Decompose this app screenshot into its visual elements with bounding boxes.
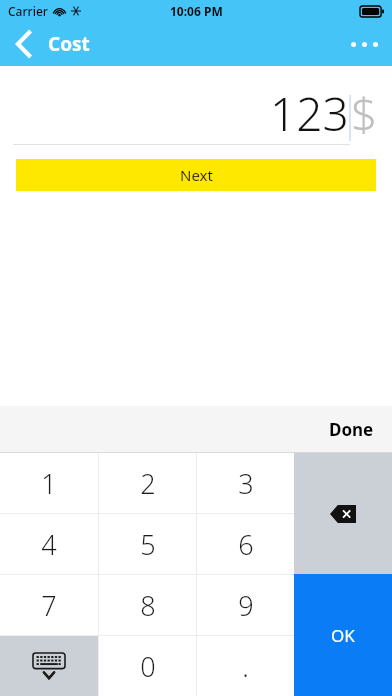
staticText: 4 bbox=[41, 526, 57, 563]
staticText: 10:06 PM bbox=[170, 3, 223, 19]
button[interactable]: 0 bbox=[99, 636, 196, 696]
staticText: Next bbox=[180, 165, 213, 185]
staticText: 9 bbox=[238, 587, 254, 624]
staticText: 6 bbox=[238, 526, 254, 563]
button[interactable]: Hide keyboard bbox=[0, 636, 98, 696]
staticText: 8 bbox=[140, 587, 156, 624]
button[interactable]: More options bbox=[336, 22, 392, 66]
staticText: 123 bbox=[270, 82, 349, 144]
staticText: $ bbox=[351, 82, 378, 144]
button[interactable]: Backspace bbox=[294, 453, 392, 574]
button[interactable]: OK bbox=[294, 574, 392, 696]
staticText: OK bbox=[331, 624, 355, 647]
staticText: 3 bbox=[238, 465, 254, 502]
staticText: Carrier bbox=[8, 3, 48, 19]
staticText: 2 bbox=[140, 465, 156, 502]
button[interactable]: 8 bbox=[99, 575, 196, 635]
staticText: Done bbox=[329, 418, 374, 441]
button[interactable]: . bbox=[197, 636, 294, 696]
button[interactable]: 9 bbox=[197, 575, 294, 635]
button[interactable]: 5 bbox=[99, 514, 196, 574]
button[interactable]: 7 bbox=[0, 575, 98, 635]
button[interactable]: 2 bbox=[99, 453, 196, 513]
button[interactable]: 6 bbox=[197, 514, 294, 574]
staticText: Cost bbox=[48, 31, 90, 57]
button[interactable]: Next bbox=[16, 159, 376, 191]
staticText: 0 bbox=[140, 648, 156, 685]
button[interactable]: Done bbox=[311, 406, 392, 452]
button[interactable]: 4 bbox=[0, 514, 98, 574]
button[interactable]: 1 bbox=[0, 453, 98, 513]
button[interactable]: 3 bbox=[197, 453, 294, 513]
staticText: 5 bbox=[140, 526, 156, 563]
staticText: . bbox=[242, 648, 249, 685]
staticText: 7 bbox=[41, 587, 57, 624]
button[interactable]: Back bbox=[0, 22, 48, 66]
staticText: 1 bbox=[41, 465, 57, 502]
